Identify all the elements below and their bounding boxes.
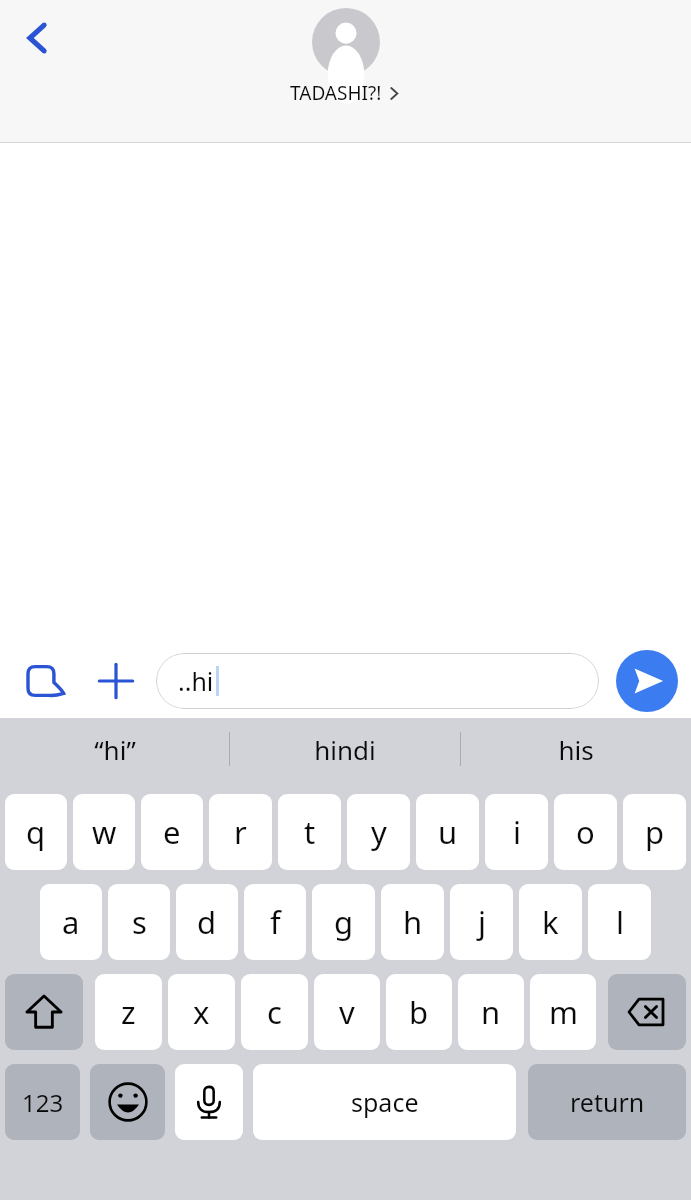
staticText: j (478, 901, 486, 943)
staticText: b (409, 991, 429, 1033)
button[interactable]: z (95, 974, 162, 1050)
button[interactable]: q (5, 794, 67, 870)
button[interactable]: Send (613, 647, 681, 715)
button[interactable]: space (253, 1064, 516, 1140)
staticText: l (616, 901, 624, 943)
button[interactable]: s (108, 884, 170, 960)
staticText: his (558, 732, 594, 767)
staticText: r (234, 811, 247, 853)
staticText: ..hi (178, 664, 214, 698)
button[interactable]: n (458, 974, 524, 1050)
staticText: k (542, 901, 559, 943)
staticText: i (513, 811, 521, 853)
staticText: c (267, 991, 282, 1033)
staticText: o (576, 811, 595, 853)
button[interactable]: Apps (20, 655, 72, 707)
button[interactable]: e (141, 794, 203, 870)
staticText: y (371, 811, 387, 853)
staticText: “hi” (94, 732, 136, 767)
staticText: x (193, 991, 210, 1033)
staticText: g (334, 901, 354, 943)
button[interactable]: return (528, 1064, 686, 1140)
staticText: p (645, 811, 665, 853)
button[interactable]: i (485, 794, 548, 870)
button[interactable]: Emoji (90, 1064, 165, 1140)
button[interactable]: y (347, 794, 410, 870)
staticText: f (270, 901, 281, 943)
button[interactable]: f (244, 884, 306, 960)
staticText: v (339, 991, 355, 1033)
staticText: u (438, 811, 458, 853)
staticText: t (304, 811, 316, 853)
button[interactable]: h (381, 884, 444, 960)
staticText: q (26, 811, 46, 853)
staticText: TADASHI?! (290, 80, 382, 106)
button[interactable]: a (40, 884, 102, 960)
staticText: return (570, 1085, 645, 1119)
staticText: m (549, 991, 578, 1033)
button[interactable]: r (209, 794, 272, 870)
staticText: n (481, 991, 501, 1033)
button[interactable]: g (312, 884, 375, 960)
button[interactable]: Back (8, 8, 68, 68)
button[interactable]: u (416, 794, 479, 870)
button[interactable]: 123 (5, 1064, 80, 1140)
button[interactable]: “hi” (0, 718, 229, 780)
button[interactable]: Add (90, 655, 142, 707)
staticText: d (197, 901, 217, 943)
button[interactable]: l (588, 884, 651, 960)
button[interactable]: m (530, 974, 596, 1050)
button[interactable]: k (519, 884, 582, 960)
button[interactable]: TADASHI?! (290, 8, 401, 106)
button[interactable]: c (241, 974, 308, 1050)
button[interactable]: d (176, 884, 238, 960)
staticText: 123 (22, 1086, 64, 1119)
staticText: s (132, 901, 147, 943)
button[interactable]: Shift (5, 974, 83, 1050)
button[interactable]: w (73, 794, 135, 870)
button[interactable]: Dictation (175, 1064, 243, 1140)
button[interactable]: o (554, 794, 617, 870)
button[interactable]: b (386, 974, 452, 1050)
button[interactable]: x (168, 974, 235, 1050)
button[interactable]: ..hi (156, 653, 599, 709)
button[interactable]: v (314, 974, 380, 1050)
staticText: z (121, 991, 136, 1033)
button[interactable]: his (461, 718, 691, 780)
staticText: space (351, 1085, 419, 1119)
staticText: h (403, 901, 423, 943)
button[interactable]: Backspace (608, 974, 686, 1050)
staticText: a (62, 901, 80, 943)
button[interactable]: p (623, 794, 686, 870)
button[interactable]: j (450, 884, 513, 960)
button[interactable]: t (278, 794, 341, 870)
staticText: hindi (314, 732, 376, 767)
staticText: e (163, 811, 181, 853)
button[interactable]: hindi (230, 718, 460, 780)
staticText: w (92, 811, 117, 853)
